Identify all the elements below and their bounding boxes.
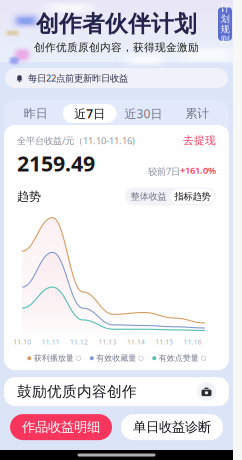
staticText: 2159.49 [17,149,95,177]
button[interactable]: 近7日 [63,104,116,123]
staticText: 单日收益诊断 [133,419,211,435]
button[interactable]: Camera [197,382,216,401]
button[interactable]: 计 [218,7,232,41]
button[interactable]: 昨日 [9,104,63,123]
staticText: 11.12 [70,337,88,346]
staticText: 则 [220,34,229,45]
staticText: 趋势 [17,189,41,204]
staticText: 11.15 [155,337,173,346]
staticText: 11.16 [184,337,202,346]
button[interactable]: 整体收益 [126,189,170,204]
staticText: 11.10 [13,337,31,346]
staticText: 作品收益明细 [22,419,100,435]
staticText: 计 [220,3,229,14]
staticText: 近30日 [124,105,162,121]
staticText: 有效收藏量 [96,353,136,363]
staticText: 昨日 [24,106,48,121]
button[interactable]: 作品收益明细 [10,414,112,440]
button[interactable]: 去提现 [183,134,216,147]
staticText: 较前7日 [148,165,180,177]
staticText: 11.13 [98,337,116,346]
staticText: 有效点赞量 [159,353,199,363]
button[interactable]: 单日收益诊断 [121,414,223,440]
staticText: 去提现 [183,134,216,147]
staticText: 累计 [185,106,209,121]
button[interactable]: 累计 [170,104,224,123]
button[interactable]: 近30日 [116,104,170,123]
staticText: 每日22点前更新昨日收益 [28,72,128,84]
staticText: 创作优质原创内容，获得现金激励 [34,41,199,54]
staticText: 整体收益 [130,191,166,202]
staticText: 近7日 [74,105,105,121]
staticText: 获利播放量 [34,353,74,363]
button[interactable]: 指标趋势 [170,189,214,204]
staticText: 鼓励优质内容创作 [17,383,137,401]
staticText: 11.11 [42,337,60,346]
staticText: 划 [220,13,229,24]
staticText: 全平台收益/元（11.10-11.16) [17,134,135,147]
staticText: 指标趋势 [174,191,210,202]
staticText: 规 [220,23,229,35]
staticText: 创作者伙伴计划 [36,10,197,38]
staticText: 11.14 [127,337,145,346]
staticText: +161.0% [180,164,216,176]
